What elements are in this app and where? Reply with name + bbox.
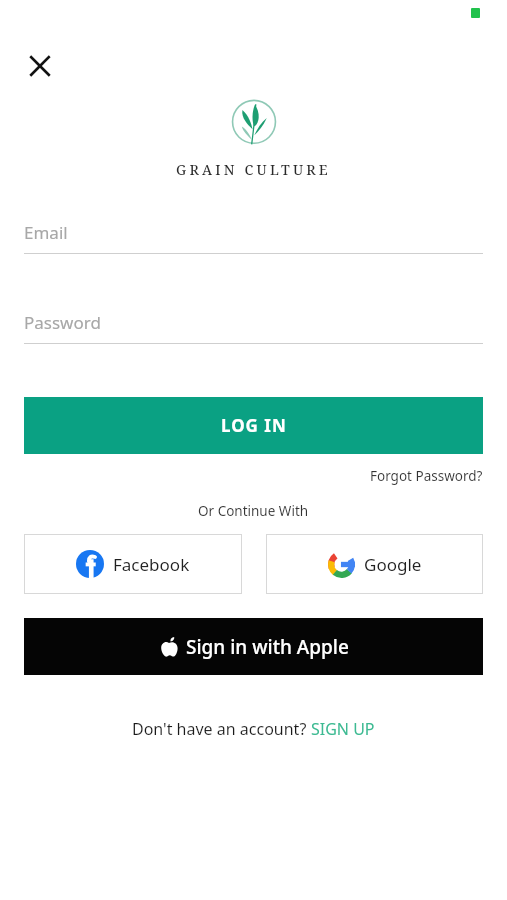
staticText: Password [24, 311, 101, 334]
button[interactable]: Close [18, 44, 62, 88]
button[interactable]: Google [266, 534, 483, 594]
staticText: Don't have an account? [132, 718, 311, 740]
staticText: Or Continue With [198, 502, 309, 520]
staticText: Email [24, 221, 68, 244]
button[interactable]: Password [24, 311, 483, 344]
button[interactable]: Forgot Password? [370, 467, 483, 485]
button[interactable]: Email [24, 221, 483, 254]
staticText: Google [364, 553, 422, 576]
staticText: Forgot Password? [370, 467, 483, 485]
staticText: Facebook [113, 553, 190, 576]
button[interactable]: Don't have an account? [132, 718, 375, 740]
staticText: SIGN UP [311, 718, 375, 740]
staticText: LOG IN [221, 414, 287, 437]
button[interactable]: LOG IN [24, 397, 483, 454]
staticText: Sign in with Apple [186, 634, 349, 660]
button[interactable]: Facebook [24, 534, 242, 594]
staticText: GRAIN CULTURE [176, 160, 331, 179]
button[interactable]: Sign in with Apple [24, 618, 483, 675]
